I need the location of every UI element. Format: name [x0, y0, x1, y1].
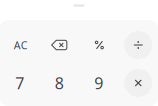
- button[interactable]: AC: [0, 26, 39, 64]
- staticText: AC: [14, 38, 28, 52]
- button[interactable]: 9: [79, 64, 118, 102]
- button[interactable]: Delete: [39, 26, 79, 64]
- button[interactable]: Percent: [79, 26, 118, 64]
- button[interactable]: Multiply: [118, 64, 158, 102]
- staticText: 8: [55, 72, 64, 94]
- button[interactable]: Divide: [118, 26, 158, 64]
- staticText: 9: [94, 72, 103, 94]
- button[interactable]: 8: [39, 64, 79, 102]
- staticText: 7: [15, 72, 24, 94]
- button[interactable]: 7: [0, 64, 39, 102]
